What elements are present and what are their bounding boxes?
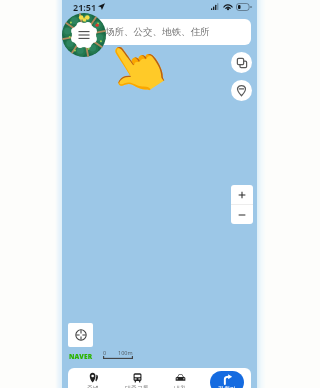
button[interactable]: Zoom out [231, 205, 253, 224]
button[interactable]: Zoom in [231, 185, 253, 204]
button[interactable]: 길찾기 [210, 371, 244, 388]
staticText: 0 [103, 349, 107, 356]
button[interactable]: 내차 [168, 368, 192, 388]
staticText: 21:51 [73, 1, 97, 13]
button[interactable]: 주변 [81, 368, 105, 388]
staticText: 주변 [87, 384, 99, 388]
staticText: 100m [118, 349, 133, 356]
button[interactable]: My location [68, 323, 93, 347]
staticText: NAVER [69, 352, 93, 361]
button[interactable]: Layers [231, 52, 252, 73]
button[interactable]: 대중교통 [125, 368, 149, 388]
staticText: 场所、公交、地铁、住所 [105, 26, 210, 38]
button[interactable]: Place [231, 80, 252, 101]
staticText: 대중교통 [125, 384, 149, 388]
staticText: 길찾기 [218, 385, 236, 388]
button[interactable]: Menu [62, 13, 106, 57]
staticText: 내차 [174, 384, 186, 388]
button[interactable]: 场所、公交、地铁、住所 [67, 19, 251, 45]
staticText: 👆 [93, 29, 171, 107]
